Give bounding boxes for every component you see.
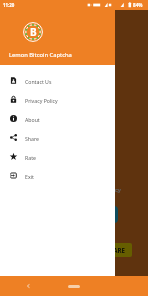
staticText: Rate bbox=[25, 154, 36, 161]
button[interactable]: Back bbox=[23, 281, 33, 291]
button[interactable]: Share bbox=[0, 129, 115, 148]
button[interactable] bbox=[82, 206, 118, 223]
staticText: 84% bbox=[133, 2, 143, 8]
button[interactable]: About bbox=[0, 110, 115, 129]
staticText: Privacy Policy bbox=[25, 97, 58, 104]
button[interactable]: Privacy Policy bbox=[0, 91, 115, 110]
staticText: Exit bbox=[25, 173, 34, 180]
staticText: About bbox=[25, 116, 40, 123]
staticText: Contact Us bbox=[25, 78, 52, 85]
staticText: SHARE bbox=[105, 246, 125, 254]
button[interactable]: Contact Us bbox=[0, 72, 115, 91]
staticText: 11:20 bbox=[3, 2, 15, 8]
button[interactable]: Rate bbox=[0, 148, 115, 167]
staticText: B bbox=[30, 25, 37, 39]
button[interactable]: SHARE bbox=[98, 243, 132, 257]
staticText: Lemon Bitcoin Captcha bbox=[9, 51, 72, 59]
staticText: Privacy Policy bbox=[83, 186, 121, 194]
staticText: Share bbox=[25, 135, 39, 142]
button[interactable]: Exit bbox=[0, 167, 115, 186]
button[interactable]: Home bbox=[68, 285, 80, 288]
